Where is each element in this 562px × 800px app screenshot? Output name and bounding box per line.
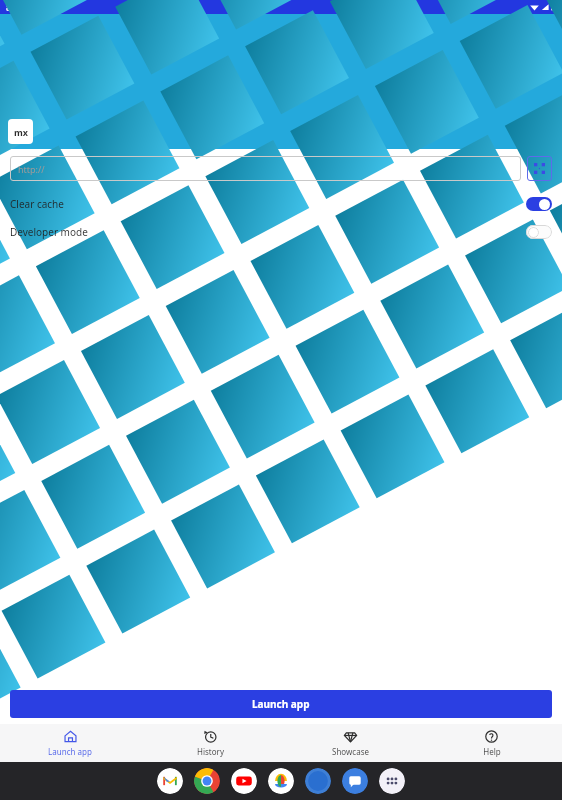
button[interactable]: App xyxy=(231,768,257,794)
button[interactable]: App xyxy=(305,768,331,794)
button[interactable]: App logo xyxy=(8,119,33,144)
button[interactable]: Clear cache xyxy=(0,194,562,214)
staticText: 8:56 xyxy=(6,1,24,13)
staticText: mx xyxy=(14,126,28,138)
button[interactable]: Help xyxy=(421,724,562,762)
button[interactable]: App xyxy=(157,768,183,794)
staticText: http:// xyxy=(18,163,45,175)
button[interactable]: Scan QR code xyxy=(527,156,552,181)
button[interactable]: App xyxy=(268,768,294,794)
staticText: Launch app xyxy=(48,746,92,757)
button[interactable]: Developer mode xyxy=(0,222,562,242)
button[interactable]: App xyxy=(342,768,368,794)
button[interactable]: Launch app xyxy=(10,690,552,718)
button[interactable]: App xyxy=(194,768,220,794)
button[interactable]: Showcase xyxy=(280,724,421,762)
button[interactable]: App xyxy=(379,768,405,794)
staticText: Showcase xyxy=(332,746,369,757)
button[interactable]: History xyxy=(140,724,280,762)
staticText: History xyxy=(197,746,224,757)
staticText: Clear cache xyxy=(10,197,64,211)
staticText: Help xyxy=(483,746,501,757)
staticText: Launch app xyxy=(252,697,310,711)
button[interactable]: http:// xyxy=(10,156,521,181)
button[interactable]: Launch app xyxy=(0,724,140,762)
staticText: Developer mode xyxy=(10,225,88,239)
